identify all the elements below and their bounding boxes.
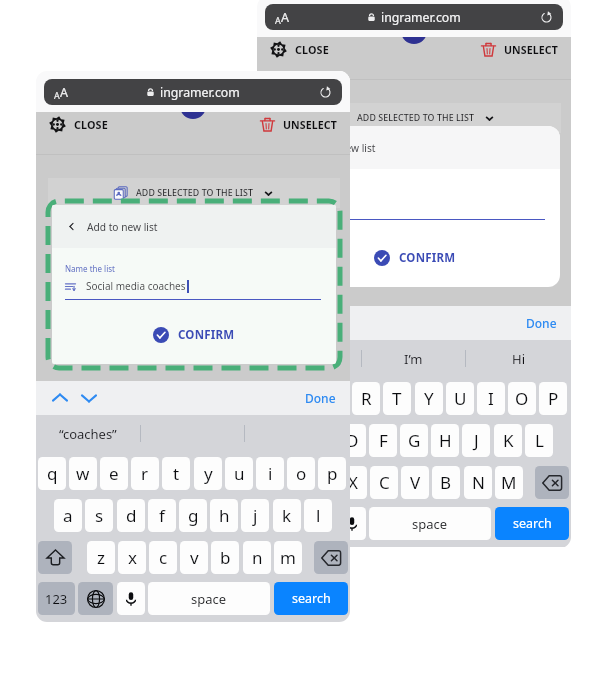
button[interactable]: search: [274, 582, 348, 615]
button[interactable]: k: [273, 499, 301, 532]
button[interactable]: CONFIRM: [153, 327, 235, 343]
button[interactable]: UNSELECT: [481, 42, 558, 57]
staticText: Hi: [512, 350, 525, 368]
button[interactable]: Done: [305, 390, 336, 406]
button[interactable]: A: [44, 79, 342, 105]
button[interactable]: Switch keyboard: [299, 507, 334, 540]
staticText: 123: [45, 590, 68, 608]
button[interactable]: UNSELECT: [260, 117, 337, 132]
button[interactable]: O: [508, 382, 536, 415]
button[interactable]: s: [85, 499, 113, 532]
button[interactable]: R: [352, 382, 380, 415]
staticText: Done: [305, 390, 336, 406]
button[interactable]: t: [162, 457, 190, 490]
button[interactable]: v: [180, 541, 208, 574]
button[interactable]: “coaches”: [36, 415, 140, 452]
button[interactable]: p: [318, 457, 346, 490]
button[interactable]: i: [256, 457, 284, 490]
button[interactable]: P: [539, 382, 567, 415]
button[interactable]: Shift: [259, 466, 293, 499]
button[interactable]: Done: [526, 315, 557, 331]
button[interactable]: a: [54, 499, 82, 532]
button[interactable]: w: [69, 457, 97, 490]
button[interactable]: B: [432, 466, 460, 499]
button[interactable]: b: [211, 541, 239, 574]
button[interactable]: z: [87, 541, 115, 574]
button[interactable]: g: [179, 499, 207, 532]
staticText: “coaches”: [59, 425, 117, 443]
button[interactable]: Add to new list: [52, 205, 336, 248]
button[interactable]: X: [339, 466, 367, 499]
button[interactable]: Switch keyboard: [78, 582, 113, 615]
button[interactable]: A: [265, 4, 563, 30]
button[interactable]: CLOSE: [270, 41, 329, 58]
button[interactable]: space: [148, 582, 270, 615]
button[interactable]: I: [477, 382, 505, 415]
button[interactable]: Previous field: [49, 387, 71, 409]
button[interactable]: I’m: [362, 340, 465, 377]
button[interactable]: 123: [38, 582, 75, 615]
button[interactable]: C: [370, 466, 398, 499]
button[interactable]: W: [290, 382, 318, 415]
button[interactable]: CLOSE: [49, 116, 108, 133]
button[interactable]: ADD SELECTED TO THE LIST: [114, 186, 273, 200]
button[interactable]: L: [525, 424, 553, 457]
button[interactable]: T: [383, 382, 411, 415]
button[interactable]: Y: [415, 382, 443, 415]
staticText: Done: [526, 315, 557, 331]
button[interactable]: y: [194, 457, 222, 490]
button[interactable]: G: [400, 424, 428, 457]
button[interactable]: M: [495, 466, 523, 499]
button[interactable]: r: [131, 457, 159, 490]
staticText: i: [268, 462, 273, 485]
button[interactable]: n: [243, 541, 271, 574]
button[interactable]: x: [118, 541, 146, 574]
button[interactable]: J: [462, 424, 490, 457]
button[interactable]: u: [225, 457, 253, 490]
button[interactable]: space: [369, 507, 491, 540]
staticText: b: [220, 546, 231, 569]
button[interactable]: Dictate: [117, 582, 145, 615]
button[interactable]: c: [149, 541, 177, 574]
button[interactable]: Add to new list: [270, 126, 560, 169]
button[interactable]: V: [401, 466, 429, 499]
button[interactable]: Z: [308, 466, 336, 499]
button[interactable]: F: [369, 424, 397, 457]
button[interactable]: f: [148, 499, 176, 532]
button[interactable]: Backspace: [314, 541, 348, 574]
button[interactable]: Hi: [466, 340, 570, 377]
button[interactable]: N: [464, 466, 492, 499]
staticText: space: [412, 515, 448, 533]
button[interactable]: Shift: [38, 541, 72, 574]
button[interactable]: l: [304, 499, 332, 532]
button[interactable]: h: [210, 499, 238, 532]
button[interactable]: search: [495, 507, 569, 540]
button[interactable]: j: [241, 499, 269, 532]
button[interactable]: o: [287, 457, 315, 490]
button[interactable]: D: [338, 424, 366, 457]
button[interactable]: Dictate: [338, 507, 366, 540]
button[interactable]: K: [494, 424, 522, 457]
button[interactable]: 123: [259, 507, 296, 540]
staticText: d: [126, 504, 137, 527]
button[interactable]: d: [117, 499, 145, 532]
button[interactable]: m: [274, 541, 302, 574]
button[interactable]: U: [446, 382, 474, 415]
button[interactable]: [257, 340, 361, 377]
staticText: f: [159, 504, 165, 527]
button[interactable]: CONFIRM: [374, 250, 456, 266]
button[interactable]: ADD SELECTED TO THE LIST: [335, 111, 494, 125]
button[interactable]: Backspace: [535, 466, 569, 499]
button[interactable]: e: [100, 457, 128, 490]
button[interactable]: q: [38, 457, 66, 490]
button[interactable]: H: [431, 424, 459, 457]
button[interactable]: E: [321, 382, 349, 415]
button[interactable]: Next field: [78, 387, 100, 409]
